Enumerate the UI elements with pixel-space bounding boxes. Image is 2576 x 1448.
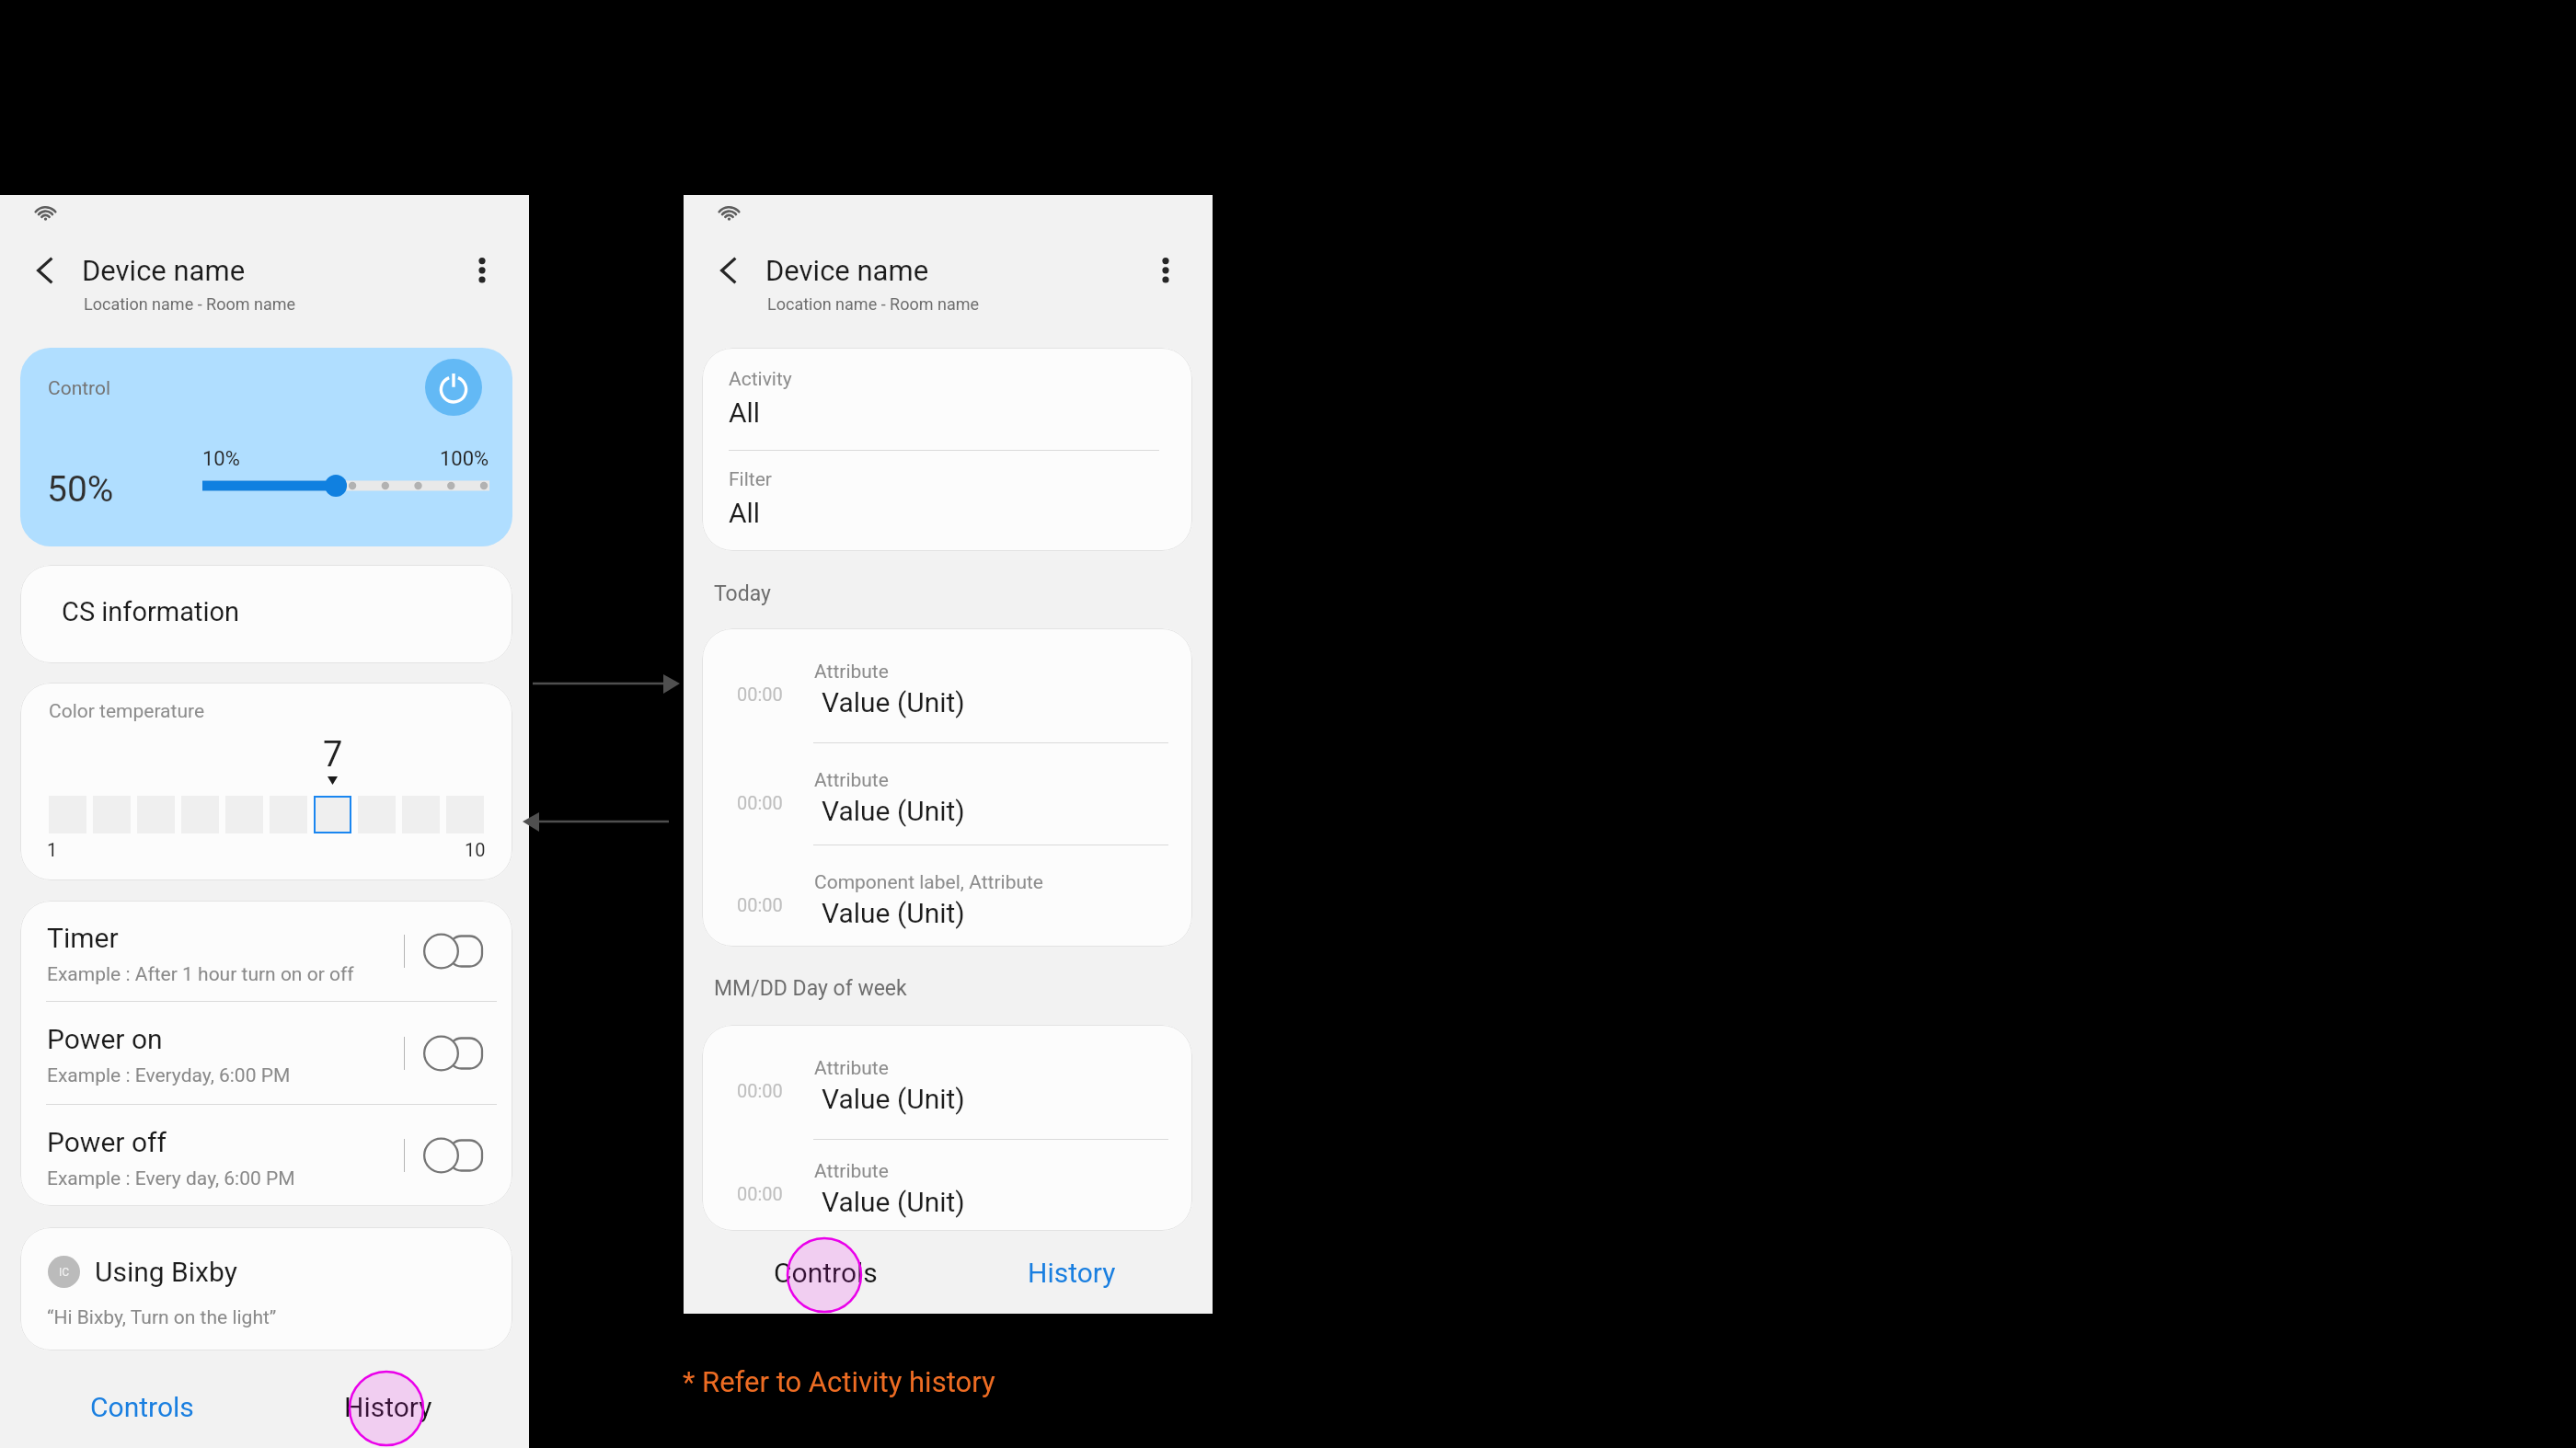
- button[interactable]: Timer: [423, 933, 482, 970]
- staticText: CS information: [62, 596, 240, 627]
- button[interactable]: Controls: [0, 1350, 265, 1448]
- button[interactable]: Control: [20, 348, 512, 546]
- button[interactable]: History: [265, 1350, 529, 1448]
- staticText: Color temperature: [49, 700, 205, 723]
- button[interactable]: Back: [37, 257, 53, 284]
- button[interactable]: 00:00: [702, 1140, 1192, 1231]
- staticText: Value (Unit): [822, 897, 965, 929]
- staticText: 00:00: [737, 792, 783, 813]
- button[interactable]: 00:00: [702, 743, 1192, 845]
- staticText: 00:00: [737, 684, 783, 705]
- staticText: Activity: [729, 368, 792, 391]
- staticText: 10: [465, 839, 486, 860]
- button[interactable]: 00:00: [702, 845, 1192, 947]
- staticText: Attribute: [814, 769, 889, 792]
- button[interactable]: Filter: [729, 468, 1192, 529]
- staticText: 00:00: [737, 894, 783, 915]
- button[interactable]: Controls: [684, 1231, 949, 1314]
- staticText: Using Bixby: [95, 1256, 237, 1288]
- staticText: 100%: [440, 447, 489, 471]
- staticText: Value (Unit): [822, 1083, 965, 1115]
- button[interactable]: [202, 475, 489, 497]
- button[interactable]: CS information: [20, 565, 512, 663]
- button[interactable]: 00:00: [702, 628, 1192, 743]
- staticText: 00:00: [737, 1080, 783, 1101]
- button[interactable]: Power on: [423, 1035, 482, 1072]
- button[interactable]: Timer: [20, 901, 512, 1002]
- button[interactable]: Power: [425, 359, 482, 416]
- staticText: Controls: [90, 1391, 194, 1423]
- staticText: Attribute: [814, 661, 889, 684]
- staticText: Example : Everyday, 6:00 PM: [47, 1064, 291, 1087]
- staticText: * Refer to Activity history: [683, 1365, 995, 1398]
- button[interactable]: Power on: [20, 1002, 512, 1105]
- button[interactable]: [314, 796, 351, 833]
- staticText: Component label, Attribute: [814, 871, 1044, 894]
- staticText: IC: [59, 1266, 70, 1279]
- staticText: All: [729, 497, 761, 529]
- staticText: Device name: [82, 254, 246, 287]
- staticText: Location name - Room name: [84, 294, 296, 314]
- staticText: Value (Unit): [822, 1186, 965, 1218]
- button[interactable]: Activity: [729, 368, 1192, 429]
- staticText: All: [729, 396, 761, 429]
- staticText: Control: [48, 377, 111, 400]
- staticText: Attribute: [814, 1160, 889, 1183]
- staticText: Attribute: [814, 1057, 889, 1080]
- staticText: Controls: [774, 1257, 878, 1289]
- staticText: 1: [47, 839, 58, 860]
- button[interactable]: Power off: [20, 1105, 512, 1206]
- staticText: History: [344, 1391, 432, 1423]
- button[interactable]: More options: [478, 258, 486, 283]
- staticText: Device name: [765, 254, 929, 287]
- staticText: 7: [323, 734, 343, 776]
- staticText: Value (Unit): [822, 686, 965, 718]
- staticText: Example : After 1 hour turn on or off: [47, 963, 354, 986]
- staticText: Power off: [47, 1126, 167, 1158]
- staticText: Power on: [47, 1023, 163, 1055]
- staticText: Example : Every day, 6:00 PM: [47, 1167, 295, 1190]
- staticText: Timer: [47, 922, 119, 954]
- button[interactable]: History: [949, 1231, 1213, 1314]
- staticText: History: [1028, 1257, 1116, 1289]
- button[interactable]: 00:00: [702, 1025, 1192, 1140]
- staticText: Location name - Room name: [767, 294, 980, 314]
- button[interactable]: IC: [20, 1227, 512, 1350]
- staticText: Today: [714, 581, 771, 606]
- staticText: Filter: [729, 468, 772, 491]
- staticText: MM/DD Day of week: [714, 976, 907, 1001]
- button[interactable]: Power off: [423, 1137, 482, 1174]
- button[interactable]: Back: [720, 257, 737, 284]
- staticText: 00:00: [737, 1183, 783, 1204]
- staticText: Value (Unit): [822, 795, 965, 827]
- staticText: “Hi Bixby, Turn on the light”: [47, 1306, 277, 1329]
- staticText: 10%: [202, 447, 240, 471]
- staticText: 50%: [47, 468, 114, 511]
- button[interactable]: More options: [1162, 258, 1169, 283]
